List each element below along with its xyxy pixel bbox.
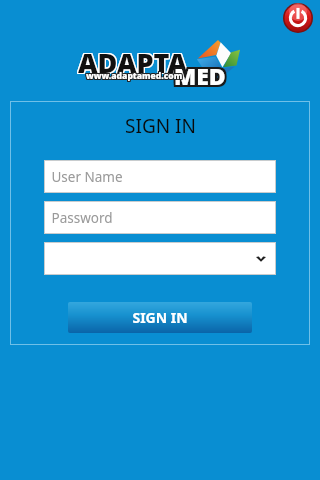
staticText: ADAPTA bbox=[77, 44, 187, 81]
staticText: www.adaptamed.com bbox=[85, 70, 182, 82]
staticText: SIGN IN bbox=[132, 308, 188, 327]
staticText: MED bbox=[174, 58, 226, 89]
staticText: ADAPTA bbox=[79, 45, 189, 82]
staticText: www.adaptamed.com bbox=[85, 71, 182, 83]
staticText: ADAPTA bbox=[79, 44, 189, 81]
button[interactable]: SIGN IN bbox=[68, 302, 252, 333]
staticText: MED bbox=[176, 60, 228, 91]
button[interactable]: Power off bbox=[283, 3, 313, 33]
staticText: www.adaptamed.com bbox=[87, 70, 184, 82]
staticText: ADAPTA bbox=[78, 43, 188, 80]
staticText: MED bbox=[172, 58, 224, 89]
staticText: www.adaptamed.com bbox=[86, 71, 183, 83]
button[interactable]: User Name bbox=[44, 160, 276, 193]
staticText: www.adaptamed.com bbox=[87, 71, 184, 83]
staticText: MED bbox=[176, 62, 228, 93]
staticText: MED bbox=[172, 60, 224, 91]
staticText: MED bbox=[174, 62, 226, 93]
staticText: www.adaptamed.com bbox=[86, 70, 183, 82]
button[interactable]: Password bbox=[44, 201, 276, 234]
staticText: ADAPTA bbox=[78, 44, 188, 81]
staticText: Password bbox=[51, 209, 113, 227]
button[interactable]: Select option bbox=[44, 242, 276, 275]
staticText: MED bbox=[176, 58, 228, 89]
staticText: MED bbox=[172, 62, 224, 93]
staticText: www.adaptamed.com bbox=[85, 69, 182, 81]
staticText: www.adaptamed.com bbox=[87, 69, 184, 81]
staticText: ADAPTA bbox=[77, 43, 187, 80]
staticText: ADAPTA bbox=[79, 43, 189, 80]
staticText: www.adaptamed.com bbox=[86, 69, 183, 81]
staticText: User Name bbox=[51, 168, 123, 186]
staticText: MED bbox=[174, 60, 226, 91]
staticText: ADAPTA bbox=[78, 45, 188, 82]
staticText: ADAPTA bbox=[77, 45, 187, 82]
staticText: SIGN IN bbox=[125, 113, 196, 139]
